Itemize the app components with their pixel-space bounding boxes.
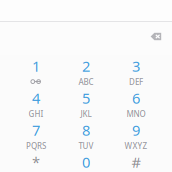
staticText: PQRS — [26, 141, 46, 151]
button[interactable]: 0 — [61, 151, 111, 172]
staticText: * — [32, 152, 40, 172]
staticText: 5 — [82, 88, 90, 108]
staticText: 4 — [32, 88, 40, 108]
staticText: 7 — [32, 120, 40, 140]
button[interactable]: 8 — [61, 119, 111, 151]
staticText: 1 — [32, 56, 40, 76]
staticText: 3 — [132, 56, 140, 76]
button[interactable]: # — [111, 151, 161, 172]
staticText: 9 — [132, 120, 140, 140]
staticText: # — [131, 152, 140, 172]
staticText: 8 — [82, 120, 90, 140]
staticText: 6 — [132, 88, 140, 108]
button[interactable]: 3 — [111, 55, 161, 87]
staticText: GHI — [28, 109, 43, 119]
button[interactable]: 7 — [11, 119, 61, 151]
staticText: JKL — [80, 109, 91, 119]
button[interactable]: * — [11, 151, 61, 172]
staticText: 0 — [82, 152, 90, 172]
button[interactable]: 5 — [61, 87, 111, 119]
staticText: MNO — [126, 109, 145, 119]
button[interactable]: 9 — [111, 119, 161, 151]
staticText: 2 — [82, 56, 90, 76]
button[interactable]: 1 — [11, 55, 61, 87]
staticText: DEF — [129, 77, 143, 87]
button[interactable]: Delete — [150, 30, 168, 46]
staticText: ABC — [78, 77, 93, 87]
button[interactable]: 6 — [111, 87, 161, 119]
button[interactable]: 4 — [11, 87, 61, 119]
button[interactable]: 2 — [61, 55, 111, 87]
staticText: WXYZ — [124, 141, 147, 151]
staticText: TUV — [78, 141, 93, 151]
